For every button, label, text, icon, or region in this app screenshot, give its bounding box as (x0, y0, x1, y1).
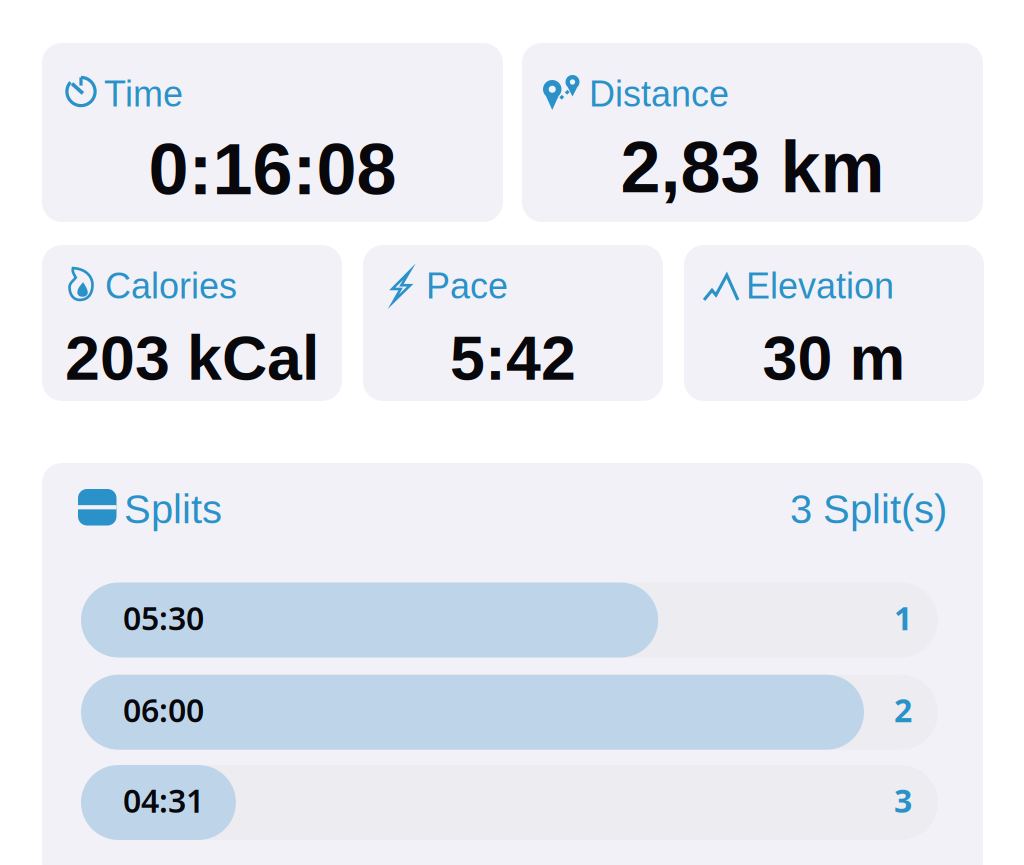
button[interactable]: Time (42, 43, 503, 222)
staticText: Distance (589, 74, 729, 114)
staticText: 0:16:08 (148, 129, 396, 209)
staticText: 1 (894, 596, 912, 639)
staticText: 2 (894, 689, 912, 731)
button[interactable]: Distance (522, 43, 983, 222)
staticText: Splits (124, 487, 222, 532)
staticText: 04:31 (123, 779, 204, 821)
staticText: 5:42 (450, 323, 576, 393)
staticText: Elevation (746, 266, 894, 306)
staticText: 3 (894, 779, 912, 821)
staticText: Calories (105, 266, 237, 306)
staticText: 05:30 (123, 596, 204, 639)
button[interactable]: 04:31 (81, 765, 938, 840)
button[interactable]: Pace (363, 245, 663, 401)
staticText: Pace (426, 266, 508, 306)
staticText: 06:00 (123, 689, 204, 731)
staticText: 2,83 km (620, 127, 884, 207)
staticText: 3 Split(s) (790, 487, 947, 532)
button[interactable]: Calories (42, 245, 342, 401)
button[interactable]: Elevation (684, 245, 984, 401)
staticText: 203 kCal (65, 323, 319, 393)
staticText: Time (104, 74, 183, 114)
button[interactable]: 05:30 (81, 582, 938, 657)
button[interactable]: 06:00 (81, 675, 938, 750)
staticText: 30 m (762, 323, 905, 393)
